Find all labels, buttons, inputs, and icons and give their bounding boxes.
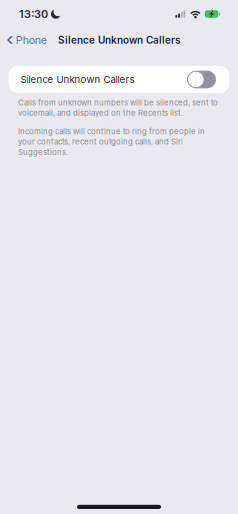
- button[interactable]: Silence Unknown Callers: [8, 66, 229, 93]
- staticText: Incoming calls will continue to ring fro…: [18, 127, 205, 157]
- staticText: 13:30: [19, 7, 48, 21]
- staticText: Calls from unknown numbers will be silen…: [18, 98, 218, 118]
- staticText: Silence Unknown Callers: [58, 34, 180, 46]
- staticText: Silence Unknown Callers: [20, 74, 134, 85]
- staticText: Phone: [16, 33, 47, 46]
- button[interactable]: Phone: [4, 28, 49, 51]
